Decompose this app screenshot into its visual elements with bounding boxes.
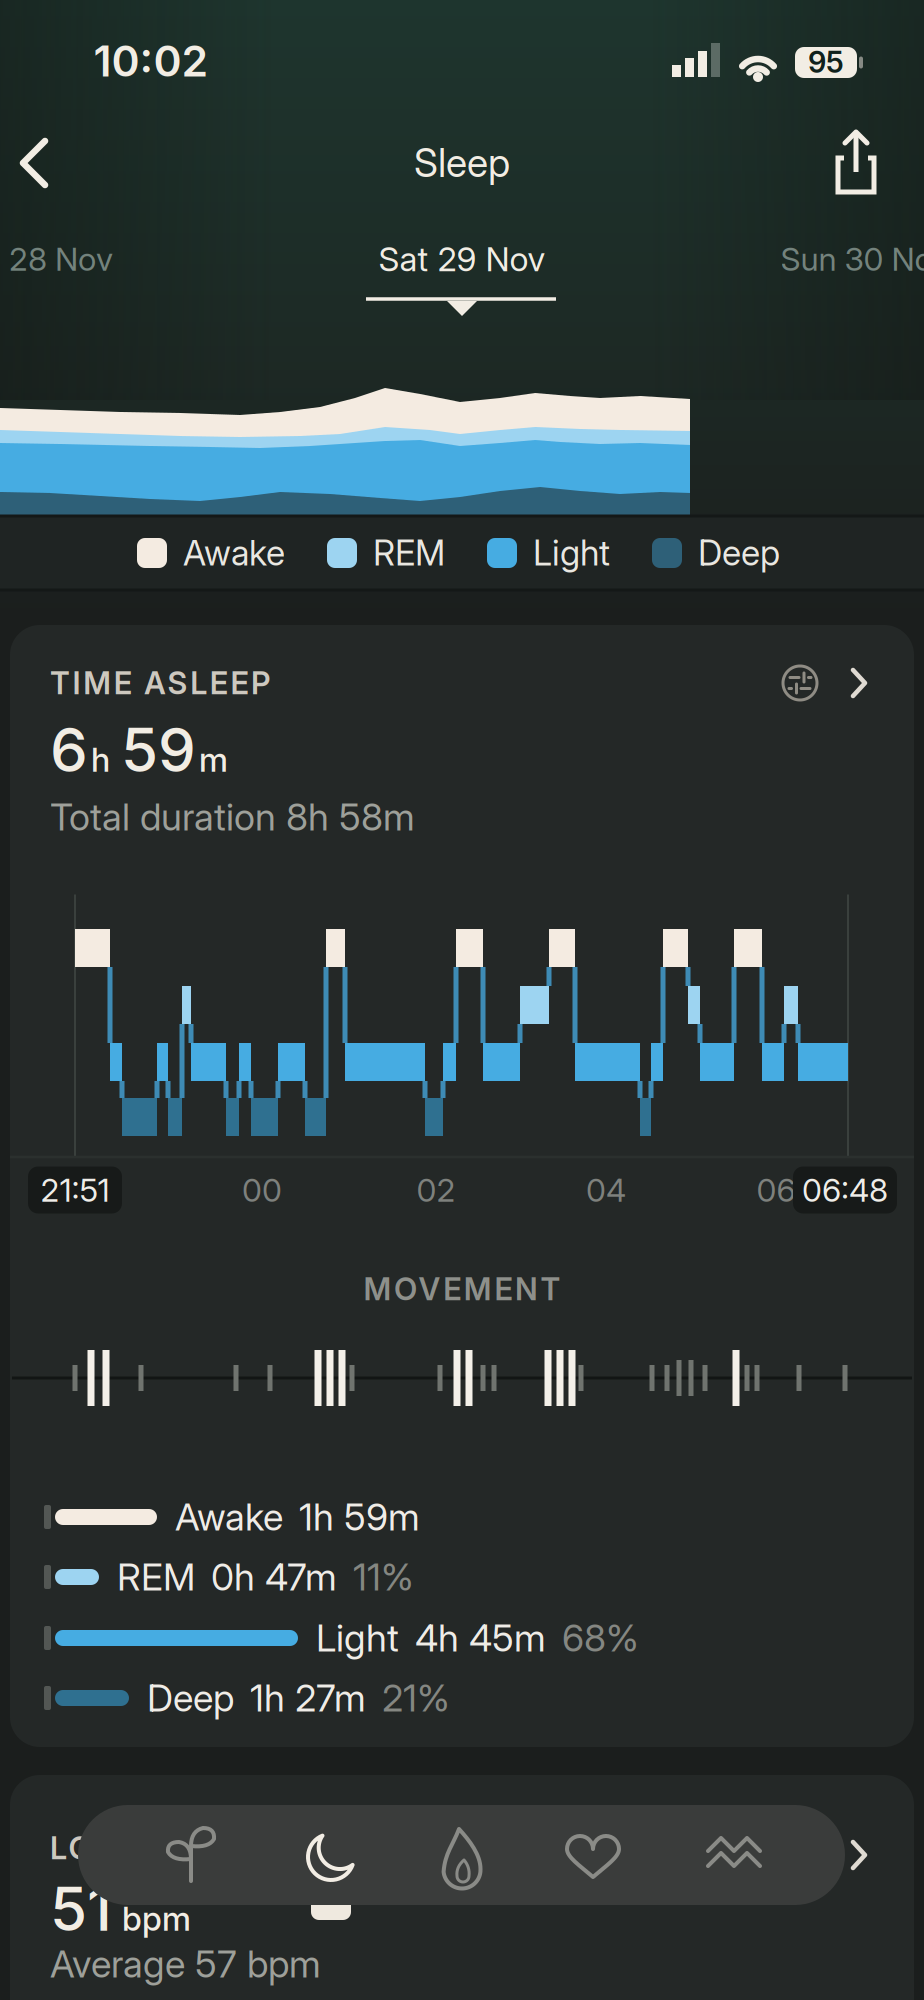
staticText: Deep bbox=[147, 1676, 234, 1720]
staticText: 04 bbox=[586, 1171, 626, 1209]
staticText: LOWEST HEART RATE bbox=[50, 1830, 412, 1866]
button[interactable]: Share bbox=[828, 128, 884, 196]
staticText: 02 bbox=[416, 1171, 455, 1209]
staticText: 68% bbox=[562, 1616, 639, 1660]
button[interactable]: Sleep details bbox=[844, 663, 874, 703]
staticText: Awake bbox=[183, 533, 285, 573]
staticText: 06:48 bbox=[802, 1171, 888, 1209]
staticText: Sat 29 Nov bbox=[378, 239, 545, 279]
staticText: bpm bbox=[122, 1899, 191, 1938]
button[interactable]: Today bbox=[151, 1815, 231, 1895]
staticText: 11% bbox=[353, 1555, 414, 1599]
button[interactable]: Activity bbox=[422, 1815, 502, 1895]
staticText: 1h 59m bbox=[299, 1495, 420, 1539]
staticText: Average 57 bpm bbox=[50, 1942, 321, 1986]
staticText: 21% bbox=[382, 1676, 450, 1720]
staticText: 95 bbox=[808, 45, 844, 79]
staticText: REM bbox=[117, 1555, 195, 1599]
staticText: 0h 47m bbox=[211, 1555, 337, 1599]
button[interactable]: Heart bbox=[553, 1815, 633, 1895]
button[interactable]: Stress bbox=[693, 1815, 773, 1895]
staticText: Total duration 8h 58m bbox=[50, 795, 415, 839]
staticText: MOVEMENT bbox=[363, 1271, 561, 1307]
button[interactable]: Sun 30 Nov bbox=[780, 240, 924, 278]
staticText: h bbox=[91, 740, 110, 779]
staticText: 6 bbox=[50, 715, 88, 785]
staticText: Light bbox=[316, 1616, 399, 1660]
staticText: 1h 27m bbox=[250, 1676, 366, 1720]
button[interactable]: Back bbox=[8, 133, 68, 193]
staticText: Deep bbox=[698, 533, 780, 573]
staticText: 06 bbox=[756, 1171, 795, 1209]
button[interactable]: Adjust sleep bbox=[775, 658, 825, 708]
staticText: Light bbox=[533, 533, 610, 573]
button[interactable]: Sleep bbox=[291, 1815, 371, 1895]
staticText: Sleep bbox=[414, 140, 510, 186]
staticText: REM bbox=[373, 533, 445, 573]
staticText: 59 bbox=[121, 715, 196, 785]
staticText: 10:02 bbox=[93, 36, 208, 86]
staticText: Fri 28 Nov bbox=[0, 240, 113, 278]
staticText: Sun 30 Nov bbox=[780, 240, 924, 278]
staticText: m bbox=[199, 740, 228, 779]
staticText: TIME ASLEEP bbox=[50, 665, 270, 701]
button[interactable]: Heart rate details bbox=[844, 1835, 874, 1875]
staticText: Awake bbox=[175, 1495, 283, 1539]
button[interactable]: Fri 28 Nov bbox=[0, 240, 113, 278]
staticText: 00 bbox=[242, 1171, 282, 1209]
button[interactable]: Sat 29 Nov bbox=[362, 240, 562, 318]
staticText: 21:51 bbox=[40, 1171, 109, 1209]
staticText: 4h 45m bbox=[415, 1616, 546, 1660]
staticText: 51 bbox=[50, 1874, 112, 1944]
